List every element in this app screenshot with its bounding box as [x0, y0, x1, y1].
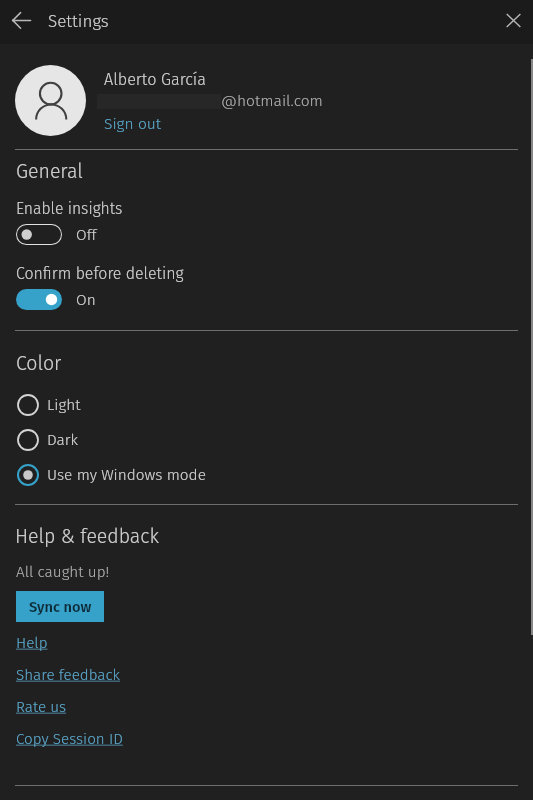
staticText: All caught up! [16, 563, 110, 581]
staticText: Enable insights [16, 199, 123, 218]
button[interactable]: Sign out [104, 114, 162, 133]
staticText: Copy Session ID [16, 730, 123, 748]
button[interactable]: Use my Windows mode [17, 464, 206, 486]
button[interactable]: Sync now [16, 591, 104, 622]
staticText: Off [76, 226, 97, 244]
staticText: Dark [47, 431, 79, 449]
staticText: Sign out [104, 114, 162, 133]
staticText: Rate us [16, 698, 67, 716]
staticText: Sync now [29, 598, 92, 616]
button[interactable]: Light [17, 394, 81, 416]
staticText: Alberto García [104, 70, 206, 89]
staticText: Use my Windows mode [47, 466, 206, 484]
staticText: Light [47, 396, 81, 414]
button[interactable]: Share feedback [16, 666, 121, 684]
button[interactable]: Copy Session ID [16, 730, 123, 748]
button[interactable]: Off [16, 224, 97, 245]
staticText: General [16, 160, 83, 183]
staticText: Help & feedback [15, 525, 159, 548]
button[interactable]: Back [6, 6, 38, 38]
staticText: Settings [48, 11, 109, 31]
staticText: @hotmail.com [221, 91, 323, 110]
button[interactable]: Close [498, 6, 529, 37]
button[interactable]: On [16, 289, 96, 310]
staticText: Share feedback [16, 666, 121, 684]
button[interactable]: Help [16, 634, 48, 652]
button[interactable]: Account picture [15, 65, 86, 136]
staticText: On [76, 291, 96, 309]
staticText: Help [16, 634, 48, 652]
button[interactable]: Dark [17, 429, 79, 451]
button[interactable]: Rate us [16, 698, 67, 716]
staticText: Confirm before deleting [16, 264, 184, 283]
staticText: Color [16, 352, 62, 375]
